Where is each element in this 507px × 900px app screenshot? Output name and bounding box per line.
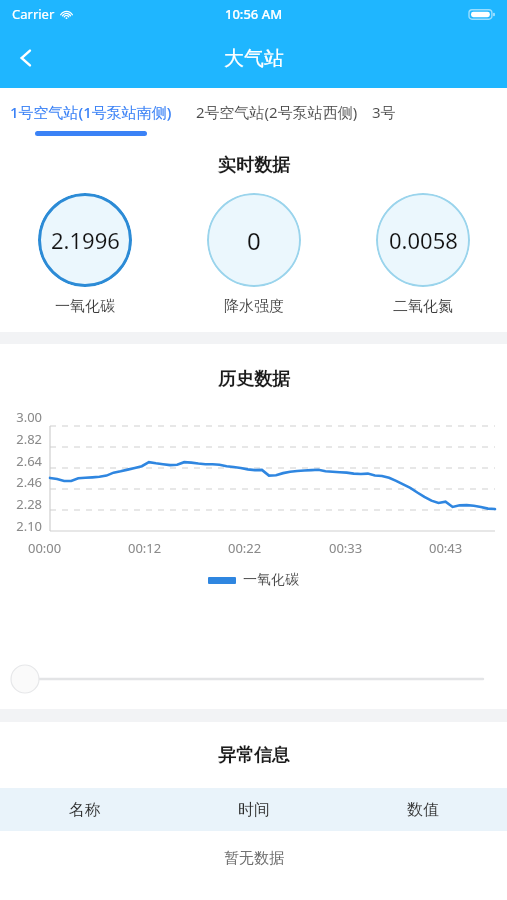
staticText: 10:56 AM bbox=[225, 5, 283, 23]
staticText: 00:43 bbox=[429, 539, 463, 557]
staticText: 一氧化碳 bbox=[55, 297, 115, 316]
staticText: 2.46 bbox=[16, 473, 42, 491]
staticText: 3.00 bbox=[16, 408, 42, 426]
button[interactable]: 0.0058 bbox=[338, 193, 507, 316]
button[interactable]: Time range slider bbox=[0, 664, 507, 694]
staticText: 2.1996 bbox=[51, 225, 120, 255]
button[interactable]: 3号 bbox=[358, 88, 396, 122]
staticText: 暂无数据 bbox=[224, 849, 284, 868]
staticText: 历史数据 bbox=[218, 368, 290, 391]
staticText: 异常信息 bbox=[218, 744, 290, 767]
staticText: 0.0058 bbox=[389, 225, 458, 255]
staticText: 大气站 bbox=[224, 46, 284, 71]
staticText: 00:12 bbox=[128, 539, 162, 557]
button[interactable]: 1号空气站(1号泵站南侧) bbox=[0, 88, 182, 136]
staticText: 0 bbox=[247, 224, 261, 257]
button[interactable]: Back bbox=[0, 32, 52, 84]
staticText: 降水强度 bbox=[224, 297, 284, 316]
staticText: 2.82 bbox=[16, 430, 42, 448]
button[interactable]: 2号空气站(2号泵站西侧) bbox=[182, 88, 358, 122]
staticText: Carrier bbox=[12, 5, 55, 23]
staticText: 2.64 bbox=[16, 452, 42, 470]
staticText: 1号空气站(1号泵站南侧) bbox=[10, 102, 172, 122]
staticText: 名称 bbox=[69, 800, 101, 820]
button[interactable]: 0 bbox=[169, 193, 338, 316]
staticText: 2.10 bbox=[16, 517, 42, 535]
staticText: 实时数据 bbox=[218, 154, 290, 177]
staticText: 二氧化氮 bbox=[393, 297, 453, 316]
staticText: 数值 bbox=[407, 800, 439, 820]
staticText: 00:33 bbox=[329, 539, 363, 557]
staticText: 00:00 bbox=[28, 539, 62, 557]
staticText: 一氧化碳 bbox=[243, 571, 299, 589]
button[interactable]: 2.1996 bbox=[0, 193, 169, 316]
staticText: 时间 bbox=[238, 800, 270, 820]
staticText: 2.28 bbox=[16, 495, 42, 513]
staticText: 00:22 bbox=[228, 539, 262, 557]
